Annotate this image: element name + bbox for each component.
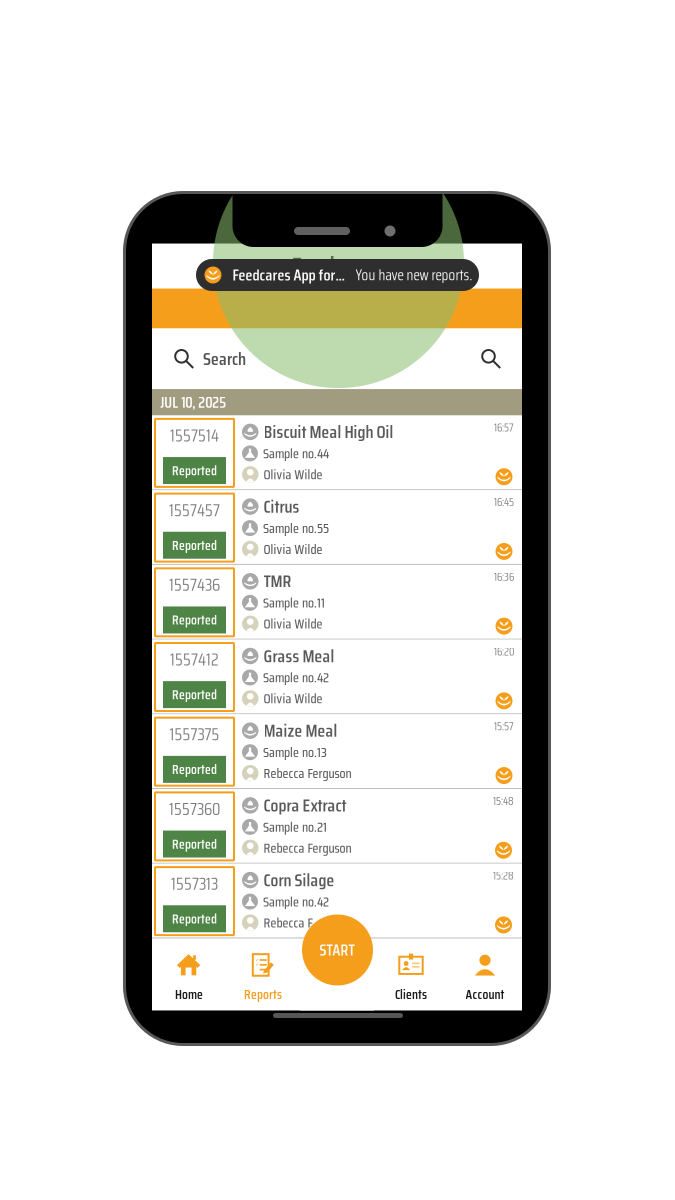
- button[interactable]: 1557412: [152, 640, 522, 714]
- staticText: Reported: [172, 684, 217, 705]
- staticText: Olivia Wilde: [263, 688, 322, 709]
- staticText: Copra Extract: [263, 791, 346, 819]
- staticText: Corn Silage: [263, 866, 334, 894]
- button[interactable]: 1557360: [152, 789, 522, 864]
- staticText: Rebecca F: [263, 912, 313, 933]
- staticText: 1557436: [169, 571, 220, 598]
- staticText: Sample no.44: [263, 443, 329, 464]
- staticText: JUL 10, 2025: [160, 390, 226, 414]
- button[interactable]: 1557375: [152, 714, 522, 789]
- staticText: Reported: [172, 535, 217, 556]
- button[interactable]: Clients: [374, 946, 448, 1010]
- button[interactable]: Reports: [226, 946, 300, 1010]
- staticText: 1557360: [169, 795, 220, 823]
- staticText: Search: [203, 345, 246, 373]
- staticText: 1557412: [170, 646, 219, 673]
- staticText: 16:45: [494, 493, 514, 511]
- staticText: Citrus: [263, 493, 299, 520]
- staticText: 1557375: [169, 721, 219, 748]
- button[interactable]: 1557313: [152, 864, 522, 938]
- staticText: Biscuit Meal High Oil: [263, 418, 393, 446]
- staticText: 16:20: [494, 643, 514, 660]
- staticText: 1557313: [171, 870, 218, 897]
- staticText: 15:48: [493, 792, 514, 810]
- button[interactable]: Account: [448, 946, 522, 1010]
- staticText: 15:57: [494, 717, 514, 735]
- staticText: Grass Meal: [263, 642, 334, 670]
- staticText: START: [319, 938, 355, 962]
- button[interactable]: 1557457: [152, 490, 522, 565]
- staticText: 15:28: [493, 867, 514, 885]
- staticText: Reported: [172, 759, 217, 780]
- staticText: 1557457: [169, 496, 220, 524]
- staticText: Reported: [172, 609, 217, 630]
- button[interactable]: 1557514: [152, 416, 522, 490]
- staticText: Sample no.11: [263, 592, 325, 614]
- staticText: Reported: [172, 460, 217, 481]
- staticText: Sample no.13: [263, 741, 327, 763]
- staticText: 16:57: [494, 419, 514, 436]
- staticText: Olivia Wilde: [263, 538, 322, 560]
- staticText: Sample no.42: [263, 891, 329, 912]
- button[interactable]: Home: [152, 946, 226, 1010]
- staticText: Clients: [395, 984, 427, 1005]
- staticText: 16:36: [494, 568, 514, 586]
- staticText: Olivia Wilde: [263, 464, 322, 485]
- staticText: Rebecca Ferguson: [263, 837, 351, 859]
- staticText: Reported: [172, 833, 217, 854]
- button[interactable]: 1557436: [152, 565, 522, 640]
- button[interactable]: Search: [152, 329, 254, 389]
- staticText: You have new reports.: [355, 263, 472, 287]
- staticText: Account: [465, 984, 504, 1005]
- staticText: Sample no.21: [263, 816, 327, 838]
- staticText: Reported: [172, 908, 217, 929]
- staticText: Reports: [244, 984, 282, 1005]
- staticText: TMR: [263, 567, 291, 595]
- staticText: Rebecca Ferguson: [263, 762, 351, 784]
- button[interactable]: Search: [473, 329, 522, 389]
- staticText: Sample no.42: [263, 667, 329, 688]
- staticText: Feedcares App for...: [232, 262, 344, 288]
- staticText: Maize Meal: [263, 717, 337, 745]
- button[interactable]: START: [302, 914, 373, 985]
- staticText: Home: [175, 984, 203, 1005]
- staticText: 1557514: [170, 422, 219, 449]
- staticText: Sample no.55: [263, 517, 329, 539]
- staticText: Olivia Wilde: [263, 613, 322, 635]
- staticText: Feedcares: [291, 246, 382, 286]
